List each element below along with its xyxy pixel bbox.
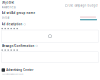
staticText: Ad description xyxy=(2,23,23,26)
staticText: Initial xyxy=(2,16,10,19)
staticText: Ad set/Ad group name xyxy=(2,11,36,15)
staticText: Awareness xyxy=(2,5,16,9)
staticText: Advertising Center xyxy=(6,68,33,72)
staticText: You can't handle these products xyxy=(2,73,24,75)
staticText: Message/Confirmation xyxy=(2,44,35,48)
button[interactable]: Preview xyxy=(80,17,97,20)
staticText: Objective xyxy=(2,1,15,4)
button[interactable]: Use campaign budget xyxy=(65,1,98,7)
staticText: Use campaign budget xyxy=(68,4,98,7)
